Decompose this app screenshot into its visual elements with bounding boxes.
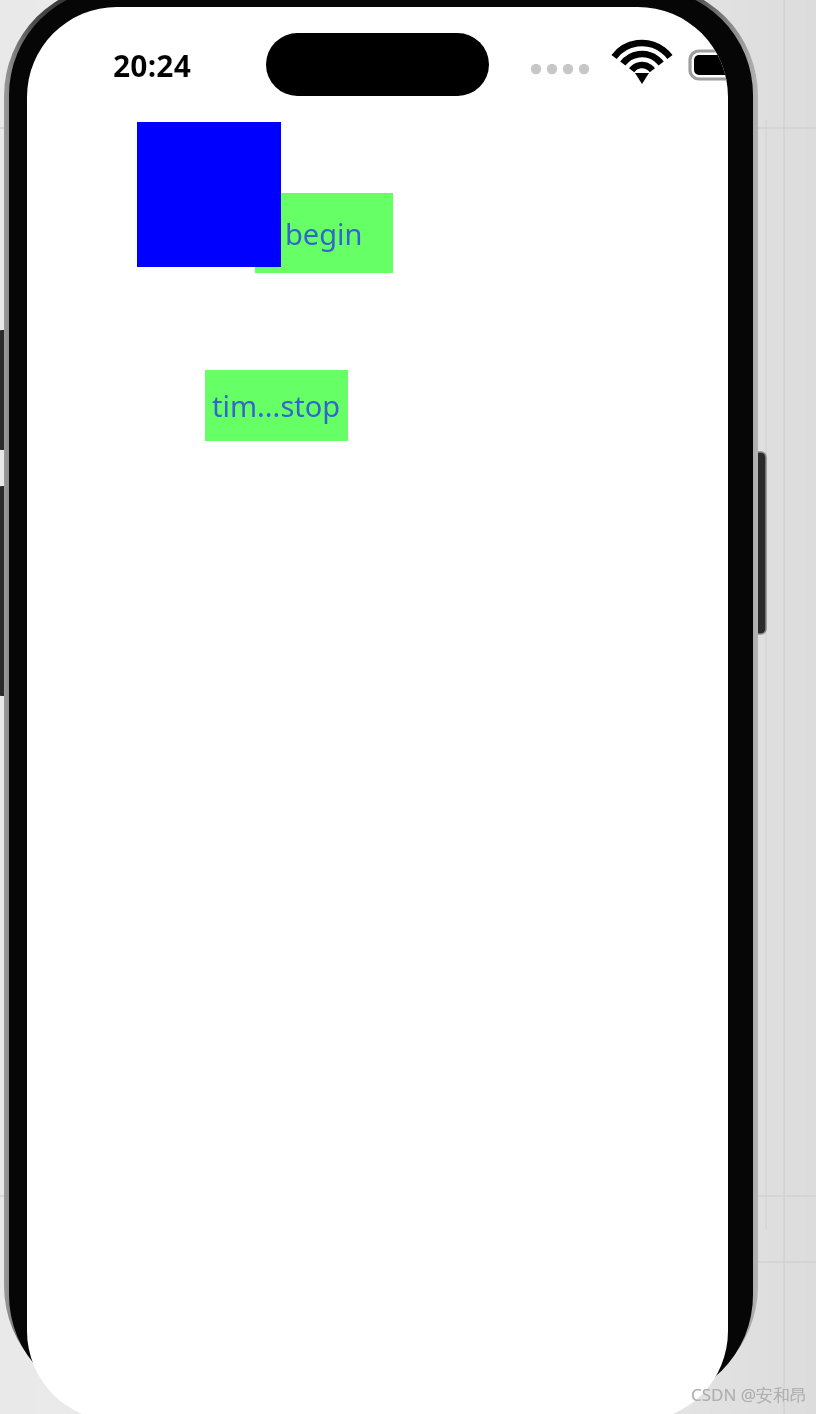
staticText: CSDN @安和昂 (691, 1383, 808, 1406)
staticText: tim...stop (212, 386, 341, 425)
staticText: 20:24 (113, 45, 192, 86)
staticText: begin (285, 214, 363, 253)
button[interactable]: begin (255, 193, 393, 273)
button[interactable]: tim...stop (205, 370, 348, 441)
